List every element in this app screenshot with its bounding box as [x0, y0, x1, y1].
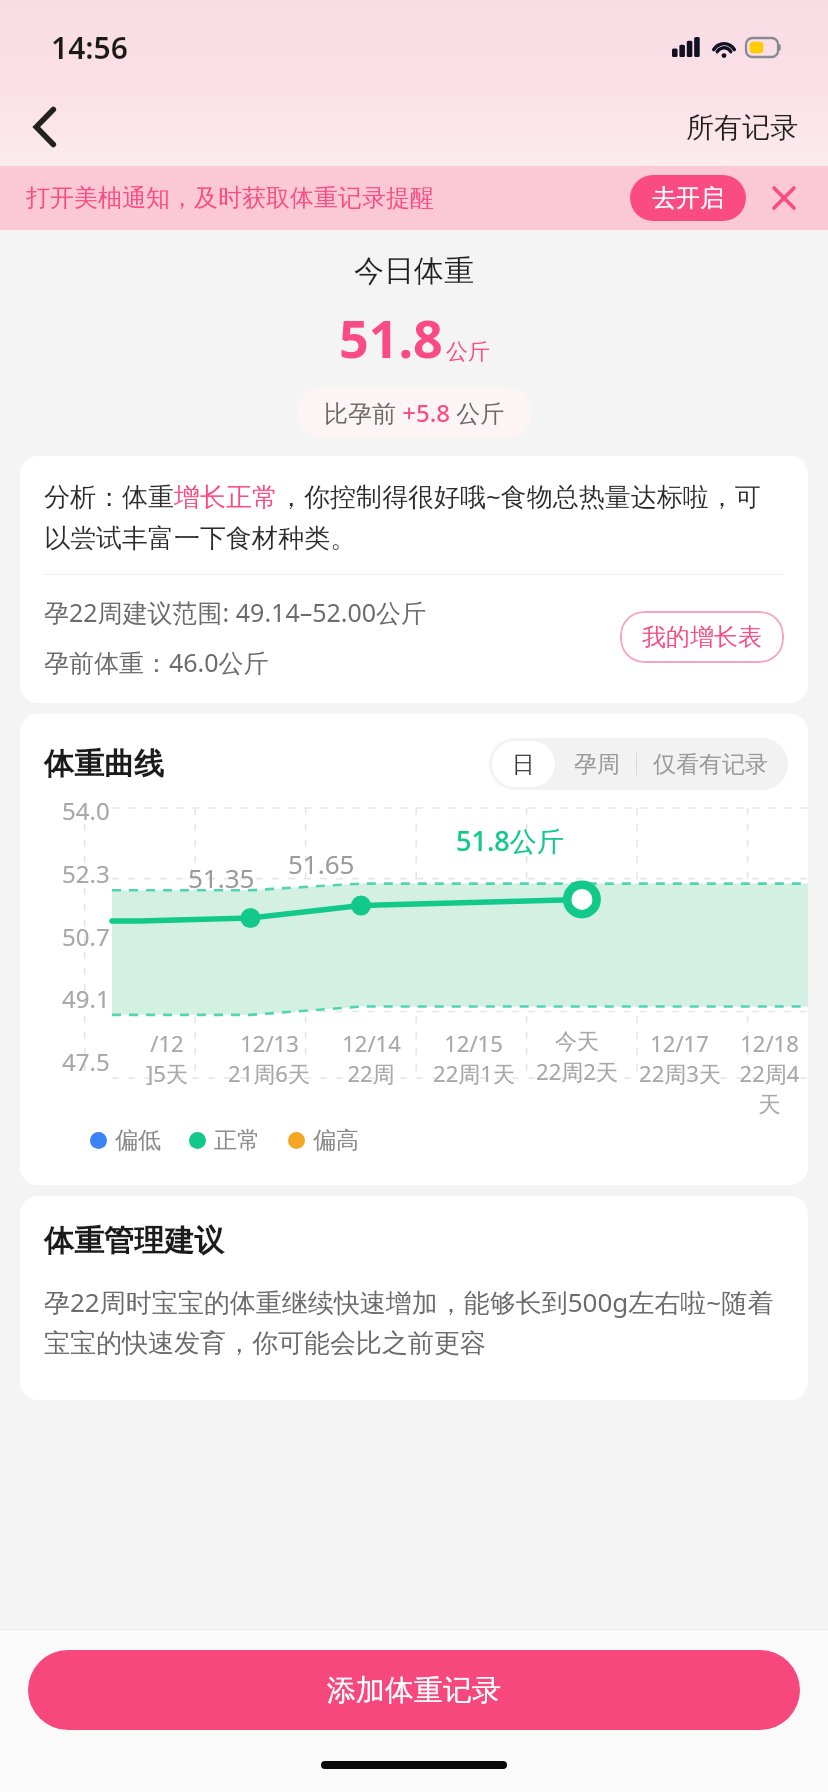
- staticText: /12: [150, 1028, 184, 1058]
- staticText: 公斤: [446, 338, 490, 366]
- button[interactable]: Close: [762, 176, 806, 220]
- button[interactable]: 添加体重记录: [28, 1650, 800, 1730]
- staticText: 孕前体重：46.0公斤: [44, 645, 269, 679]
- staticText: 22周3天: [639, 1058, 721, 1088]
- button[interactable]: 孕周: [558, 740, 636, 789]
- button[interactable]: Back: [14, 96, 76, 158]
- staticText: 正常: [214, 1126, 260, 1155]
- staticText: 孕22周建议范围: 49.14–52.00公斤: [44, 595, 427, 629]
- staticText: 21周6天: [228, 1058, 310, 1088]
- staticText: 我的增长表: [642, 622, 762, 652]
- staticText: 54.0: [62, 794, 110, 827]
- staticText: 打开美柚通知，及时获取体重记录提醒: [26, 183, 434, 213]
- staticText: 51.35: [188, 860, 255, 895]
- staticText: 偏高: [313, 1126, 359, 1155]
- staticText: 分析：体重增长正常，你控制得很好哦~食物总热量达标啦，可以尝试丰富一下食材种类。: [44, 478, 784, 554]
- staticText: 孕22周时宝宝的体重继续快速增加，能够长到500g左右啦~随着宝宝的快速发育，你…: [44, 1284, 784, 1360]
- staticText: 12/14: [342, 1028, 401, 1058]
- staticText: 22周4天: [731, 1058, 808, 1118]
- staticText: 49.1: [62, 982, 110, 1015]
- staticText: ]5天: [146, 1058, 188, 1088]
- staticText: 22周: [347, 1058, 395, 1088]
- staticText: 体重管理建议: [44, 1222, 224, 1260]
- button[interactable]: 比孕前 +5.8 公斤: [298, 387, 531, 438]
- staticText: 50.7: [62, 920, 110, 953]
- staticText: 51.8公斤: [456, 822, 564, 859]
- staticText: 14:56: [51, 27, 128, 68]
- staticText: 12/15: [444, 1028, 503, 1058]
- staticText: 12/17: [650, 1028, 709, 1058]
- staticText: 52.3: [62, 857, 110, 890]
- staticText: 仅看有记录: [653, 750, 768, 779]
- button[interactable]: 所有记录: [678, 104, 806, 151]
- button[interactable]: 分析：体重增长正常，你控制得很好哦~食物总热量达标啦，可以尝试丰富一下食材种类。: [20, 456, 808, 703]
- staticText: 添加体重记录: [327, 1672, 501, 1709]
- staticText: 22周2天: [536, 1056, 618, 1086]
- staticText: 偏低: [115, 1126, 161, 1155]
- staticText: 今天: [555, 1028, 599, 1056]
- staticText: 22周1天: [433, 1058, 515, 1088]
- staticText: 体重曲线: [44, 745, 164, 783]
- staticText: 51.65: [288, 846, 355, 881]
- staticText: 12/18: [740, 1028, 799, 1058]
- button[interactable]: 我的增长表: [620, 611, 784, 663]
- staticText: 12/13: [240, 1028, 299, 1058]
- staticText: 日: [512, 750, 535, 779]
- staticText: 比孕前 +5.8 公斤: [324, 396, 505, 429]
- staticText: 孕周: [574, 750, 620, 779]
- staticText: 51.8: [339, 302, 443, 373]
- button[interactable]: 仅看有记录: [637, 740, 788, 789]
- staticText: 今日体重: [354, 252, 474, 290]
- staticText: 所有记录: [686, 110, 798, 145]
- staticText: 去开启: [652, 183, 724, 213]
- button[interactable]: 日: [492, 741, 555, 787]
- staticText: 47.5: [62, 1045, 110, 1078]
- button[interactable]: 体重管理建议: [20, 1196, 808, 1400]
- button[interactable]: 去开启: [630, 175, 746, 221]
